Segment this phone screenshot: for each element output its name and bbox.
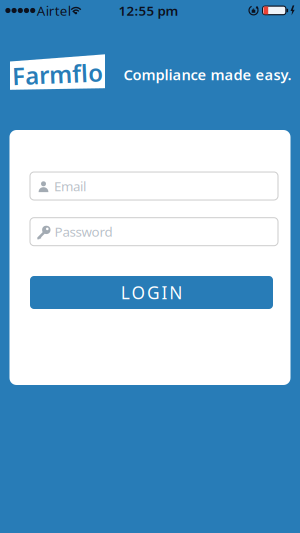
button[interactable]: Password — [30, 218, 278, 246]
staticText: 12:55 pm — [118, 2, 178, 19]
staticText: Password — [54, 223, 112, 240]
staticText: Compliance made easy. — [123, 65, 291, 84]
staticText: LOGIN — [121, 281, 182, 304]
button[interactable]: Email — [30, 172, 278, 200]
staticText: Farmflo — [12, 58, 103, 90]
staticText: Airtel — [37, 2, 71, 19]
button[interactable]: LOGIN — [30, 276, 273, 309]
staticText: Email — [54, 177, 86, 195]
